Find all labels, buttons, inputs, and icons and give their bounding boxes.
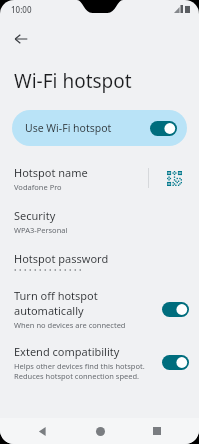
button[interactable]: Hotspot name [0, 162, 148, 194]
button[interactable]: Recent apps [141, 418, 173, 444]
staticText: Hotspot password [14, 251, 109, 266]
staticText: 10:00 [11, 4, 32, 15]
staticText: Hotspot name [14, 165, 88, 180]
staticText: Reduces hotspot connection speed. [14, 371, 140, 381]
staticText: automatically [14, 303, 84, 318]
staticText: Extend compatibility [14, 344, 120, 359]
staticText: Wi-Fi hotspot [14, 68, 132, 94]
button[interactable]: Security [0, 206, 199, 237]
staticText: WPA3-Personal [14, 225, 68, 235]
staticText: Turn off hotspot [14, 288, 98, 303]
staticText: Security [14, 208, 56, 223]
button[interactable]: Use Wi-Fi hotspot [12, 110, 187, 146]
staticText: Helps other devices find this hotspot. [14, 361, 145, 371]
staticText: When no devices are connected [14, 320, 126, 330]
button[interactable]: Turn off hotspot [0, 285, 199, 333]
button[interactable]: Back [26, 418, 58, 444]
staticText: Use Wi-Fi hotspot [25, 121, 112, 135]
button[interactable]: Extend compatibility [0, 341, 199, 384]
staticText: Vodafone Pro [14, 182, 62, 192]
button[interactable]: Hotspot password [0, 249, 199, 275]
button[interactable]: Back [6, 24, 36, 54]
button[interactable]: Share hotspot QR code [149, 162, 199, 194]
button[interactable]: Home [84, 418, 116, 444]
